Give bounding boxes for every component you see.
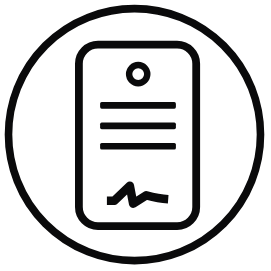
button[interactable]: Signed document xyxy=(0,0,271,271)
